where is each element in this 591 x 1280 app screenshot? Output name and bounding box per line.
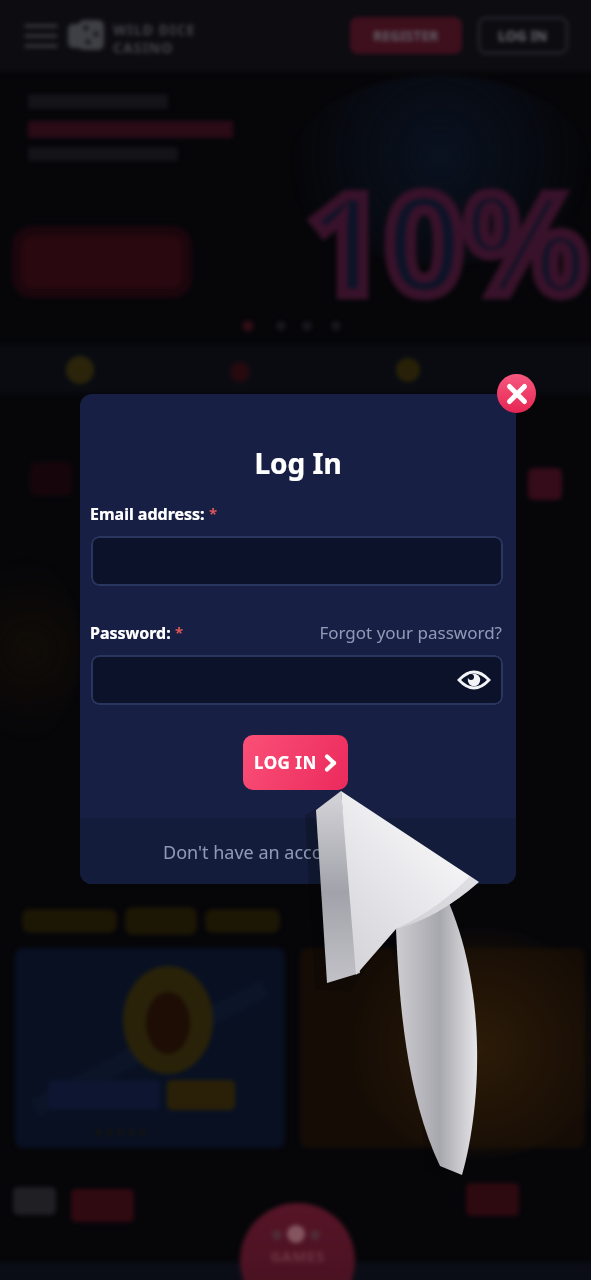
button[interactable]: Forgot your password?	[310, 621, 502, 644]
staticText: REGISTER	[373, 26, 439, 45]
staticText: Log In	[80, 444, 516, 482]
staticText: CASINO	[113, 38, 174, 57]
staticText: LOG IN	[254, 751, 317, 774]
button[interactable]: Don't have an account?	[163, 840, 360, 865]
staticText: 10%	[306, 146, 589, 334]
button[interactable]: REGISTER	[350, 17, 462, 54]
staticText: Email address:	[90, 503, 209, 525]
button[interactable]	[26, 24, 56, 48]
staticText: x x x x x	[95, 1122, 147, 1140]
button[interactable]	[91, 655, 503, 705]
staticText: LOG IN	[498, 26, 548, 45]
staticText: 10%	[306, 146, 589, 334]
button[interactable]: LOG IN	[478, 17, 568, 54]
staticText: *	[209, 503, 218, 523]
button[interactable]: LOG IN	[243, 735, 348, 790]
staticText: *	[175, 622, 184, 642]
staticText: WILD DICE	[113, 20, 196, 39]
button[interactable]: GAMES	[240, 1203, 355, 1280]
staticText: GAMES	[240, 1246, 355, 1266]
button[interactable]	[458, 668, 490, 692]
staticText: Password:	[90, 622, 175, 644]
button[interactable]	[497, 374, 536, 413]
button[interactable]	[91, 536, 503, 586]
